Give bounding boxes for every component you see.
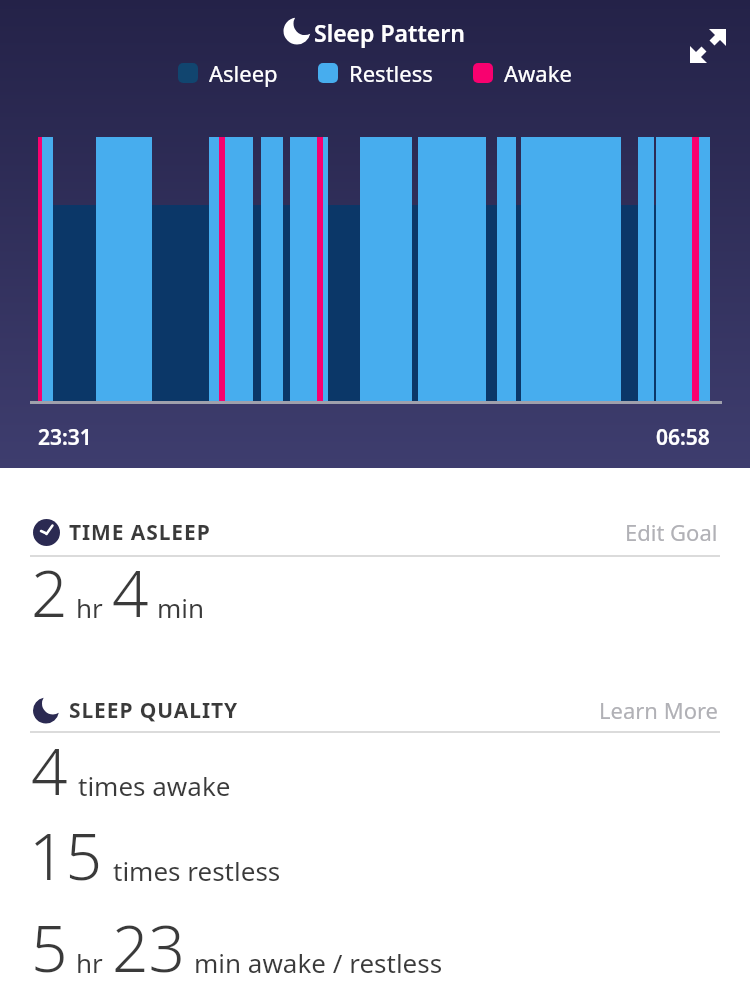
staticText: times awake <box>78 768 231 803</box>
staticText: TIME ASLEEP <box>69 518 211 547</box>
staticText: 4 <box>112 549 149 636</box>
staticText: Learn More <box>599 695 718 725</box>
staticText: Awake <box>504 58 572 88</box>
staticText: min <box>157 590 205 625</box>
staticText: min awake / restless <box>194 945 443 980</box>
staticText: 2 <box>31 549 68 636</box>
staticText: Edit Goal <box>625 517 718 547</box>
staticText: 5 <box>31 904 68 991</box>
button[interactable]: TIME ASLEEP <box>33 517 718 547</box>
staticText: Sleep Pattern <box>314 17 465 48</box>
staticText: times restless <box>113 853 281 888</box>
staticText: 15 <box>29 812 103 899</box>
staticText: 06:58 <box>656 423 710 452</box>
button[interactable]: SLEEP QUALITY <box>33 695 718 725</box>
staticText: 23 <box>112 904 186 991</box>
staticText: hr <box>76 945 103 980</box>
staticText: 4 <box>31 727 68 814</box>
staticText: hr <box>76 590 103 625</box>
staticText: Restless <box>349 58 433 88</box>
staticText: Asleep <box>209 58 278 88</box>
staticText: SLEEP QUALITY <box>69 696 239 725</box>
button[interactable] <box>688 26 728 66</box>
staticText: 23:31 <box>38 423 92 452</box>
